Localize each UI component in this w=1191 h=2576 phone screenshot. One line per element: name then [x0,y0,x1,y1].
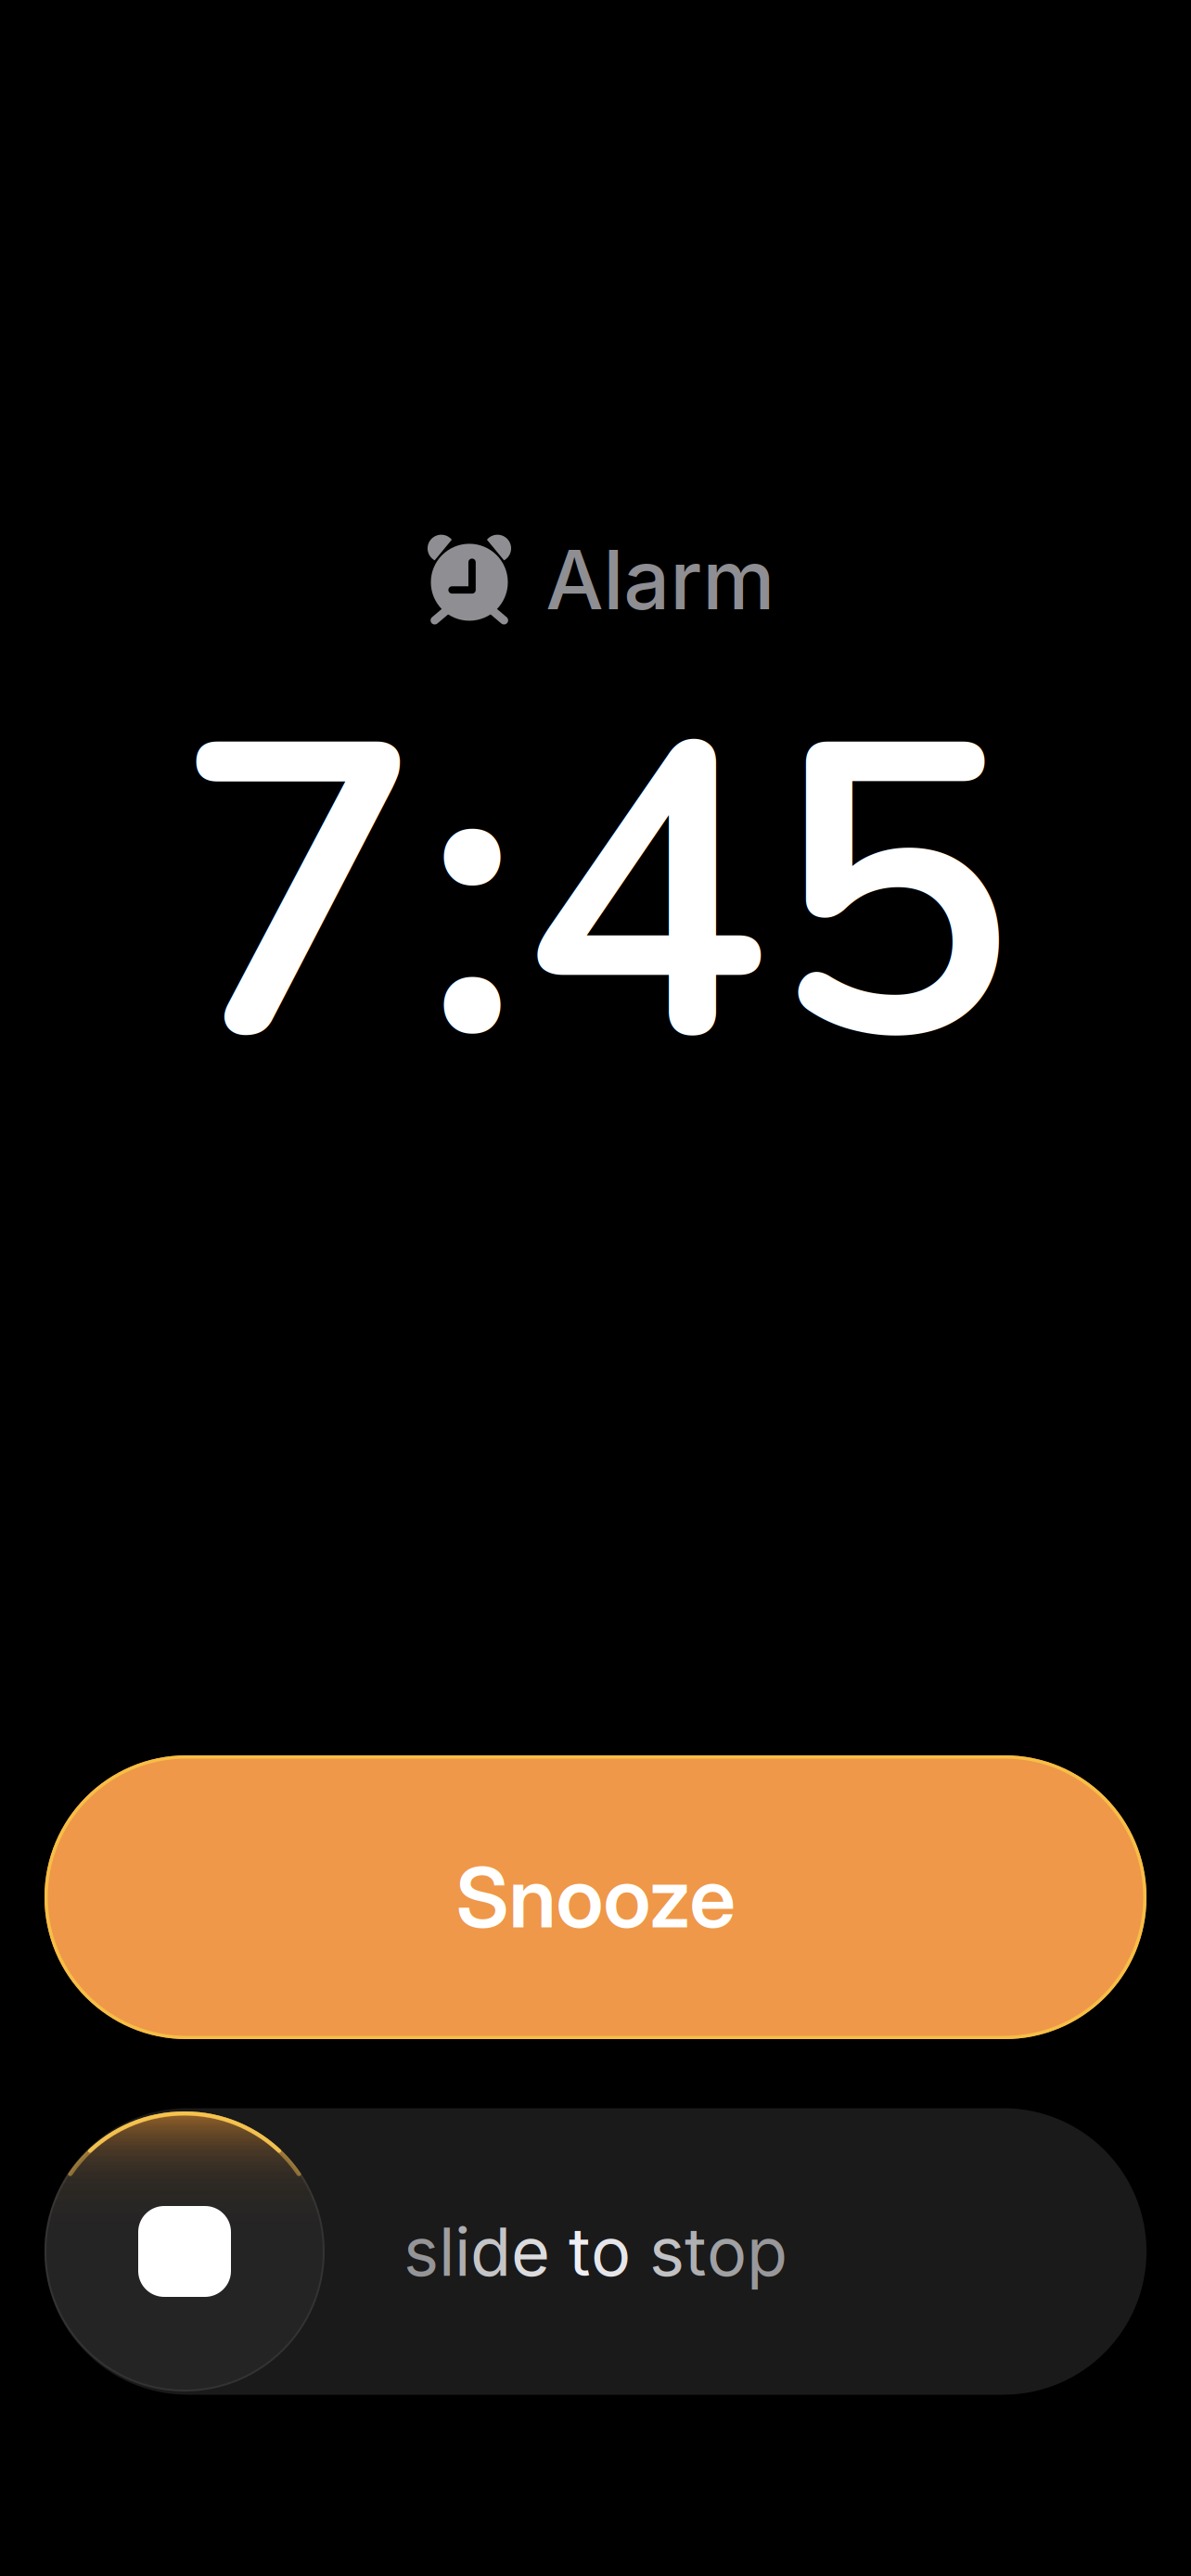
staticText: Snooze [456,1847,735,1947]
staticText: d [470,2211,511,2292]
staticText: o [707,2211,747,2292]
staticText: i [455,2211,470,2292]
staticText: l [439,2211,455,2292]
staticText: s [403,2211,439,2292]
staticText: 7:45 [175,617,1016,1177]
button[interactable]: Slide to stop [45,2108,1146,2395]
staticText: s [649,2211,685,2292]
staticText: t [685,2211,707,2292]
staticText: p [747,2211,788,2292]
button[interactable]: Snooze [45,1755,1146,2039]
staticText: Alarm [546,530,775,629]
staticText: o [591,2211,631,2292]
staticText: t [569,2211,591,2292]
staticText: e [511,2211,550,2292]
